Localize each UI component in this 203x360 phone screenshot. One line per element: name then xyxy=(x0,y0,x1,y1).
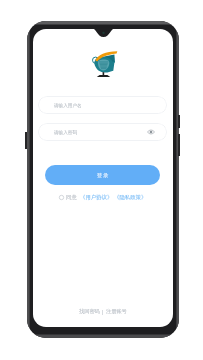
staticText: 请输入用户名 xyxy=(54,103,82,109)
button[interactable]: Show password xyxy=(147,128,155,136)
button[interactable]: 请输入用户名 xyxy=(38,96,167,114)
staticText: 登 录 xyxy=(97,172,109,179)
button[interactable]: 《隐私政策》 xyxy=(114,194,147,201)
staticText: | xyxy=(100,308,106,315)
staticText: 请输入密码 xyxy=(54,130,77,136)
staticText: 同意 xyxy=(66,194,77,201)
button[interactable]: 注册账号 xyxy=(106,308,127,315)
button[interactable]: 《用户协议》 xyxy=(80,194,113,201)
button[interactable]: 找回密码 xyxy=(79,308,100,315)
button[interactable]: 请输入密码 xyxy=(38,123,167,141)
button[interactable]: 登 录 xyxy=(45,165,160,185)
